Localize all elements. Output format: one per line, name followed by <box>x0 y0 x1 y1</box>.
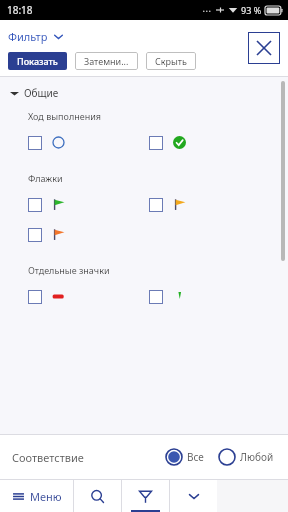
staticText: Фильтр <box>8 29 48 44</box>
button[interactable]: Закрыть <box>248 32 280 64</box>
staticText: Показать <box>17 55 58 67</box>
button[interactable]: Фильтр <box>8 27 64 46</box>
staticText: Флажки <box>28 172 63 184</box>
staticText: Отдельные значки <box>28 264 110 276</box>
staticText: Затемни... <box>84 55 129 67</box>
staticText: Любой <box>240 450 274 464</box>
staticText: Общие <box>24 86 59 100</box>
staticText: 18:18 <box>7 3 33 17</box>
staticText: Соответствие <box>12 450 84 465</box>
button[interactable] <box>149 287 187 306</box>
button[interactable]: Любой <box>216 444 276 470</box>
button[interactable] <box>28 195 66 214</box>
button[interactable] <box>28 287 66 306</box>
button[interactable]: Поиск <box>74 480 121 512</box>
button[interactable] <box>149 195 187 214</box>
button[interactable]: Затемни... <box>75 52 138 70</box>
button[interactable]: Развернуть <box>170 480 217 512</box>
button[interactable]: Фильтр <box>122 480 169 512</box>
staticText: Меню <box>30 489 62 504</box>
staticText: 93 % <box>241 4 262 16</box>
button[interactable] <box>28 225 66 244</box>
staticText: Скрыть <box>155 55 187 67</box>
button[interactable] <box>149 133 187 152</box>
button[interactable] <box>28 133 66 152</box>
button[interactable]: Меню <box>0 480 73 512</box>
button[interactable]: Все <box>163 444 206 470</box>
button[interactable]: График выполнения проекта <box>3 40 285 104</box>
staticText: График выполнения проекта <box>61 63 244 81</box>
button[interactable]: Скрыть <box>146 52 196 70</box>
button[interactable]: Показать <box>8 52 67 70</box>
button[interactable]: Общие <box>0 84 288 102</box>
staticText: Все <box>187 450 204 464</box>
staticText: Ход выполнения <box>28 110 101 122</box>
